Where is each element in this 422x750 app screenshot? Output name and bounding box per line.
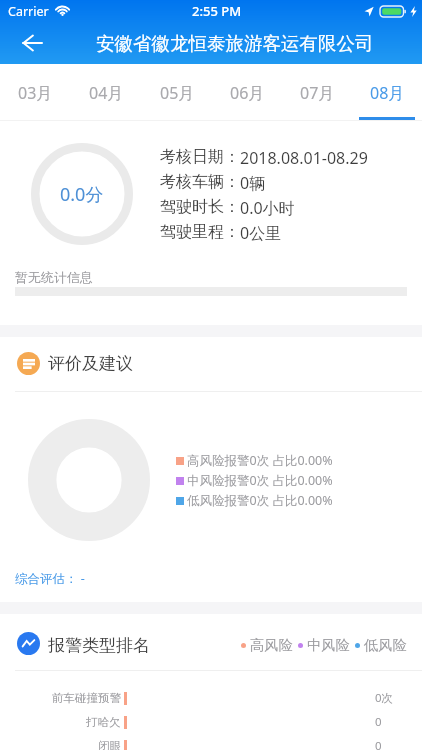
staticText: 08月 <box>370 82 405 104</box>
staticText: 低风险报警0次 占比0.00% <box>187 492 333 509</box>
staticText: 中风险 <box>307 636 350 654</box>
staticText: 综合评估： - <box>15 570 85 587</box>
staticText: 0 <box>375 738 382 750</box>
staticText: 考核车辆： <box>160 172 240 192</box>
staticText: 0.0分 <box>60 182 104 207</box>
staticText: 考核日期： <box>160 147 240 167</box>
staticText: 评价及建议 <box>48 353 133 374</box>
staticText: 0公里 <box>240 222 282 244</box>
staticText: 0辆 <box>240 172 266 194</box>
staticText: 暂无统计信息 <box>15 269 93 285</box>
staticText: 2:55 PM <box>192 2 242 20</box>
staticText: 驾驶里程： <box>160 222 240 242</box>
staticText: 2018.08.01-08.29 <box>240 147 368 169</box>
staticText: 06月 <box>230 82 265 104</box>
button[interactable]: 05月 <box>142 64 212 120</box>
button[interactable]: 08月 <box>352 64 422 120</box>
button[interactable]: 03月 <box>0 64 71 120</box>
staticText: 前车碰撞预警 <box>52 691 121 705</box>
staticText: 0次 <box>375 690 394 706</box>
staticText: 打哈欠 <box>86 715 121 729</box>
staticText: 高风险报警0次 占比0.00% <box>187 452 333 469</box>
button[interactable]: 06月 <box>212 64 282 120</box>
staticText: 05月 <box>160 82 195 104</box>
staticText: 高风险 <box>250 636 293 654</box>
staticText: 04月 <box>89 82 124 104</box>
button[interactable]: 04月 <box>71 64 142 120</box>
staticText: 驾驶时长： <box>160 197 240 217</box>
staticText: 中风险报警0次 占比0.00% <box>187 472 333 489</box>
staticText: 07月 <box>300 82 335 104</box>
staticText: 0.0小时 <box>240 197 295 219</box>
button[interactable]: Back <box>12 22 52 64</box>
staticText: 报警类型排名 <box>48 635 150 656</box>
staticText: Carrier <box>8 3 49 20</box>
staticText: 闭眼 <box>98 739 121 750</box>
staticText: 0 <box>375 714 382 730</box>
staticText: 低风险 <box>364 636 407 654</box>
staticText: 安徽省徽龙恒泰旅游客运有限公司 <box>96 32 374 55</box>
staticText: 03月 <box>18 82 53 104</box>
button[interactable]: 07月 <box>282 64 352 120</box>
